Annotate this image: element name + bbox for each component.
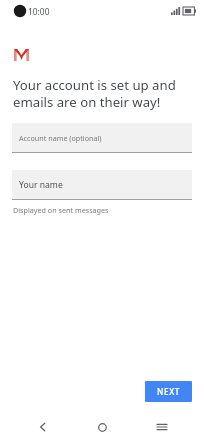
staticText: Your account is set up and emails are on… <box>13 76 176 111</box>
staticText: Account name (optional) <box>19 133 102 143</box>
button[interactable]: Back <box>26 412 60 442</box>
button[interactable]: Home <box>85 412 119 442</box>
button[interactable]: Account name (optional) <box>12 123 192 153</box>
button[interactable]: Recent apps <box>145 412 179 442</box>
button[interactable]: NEXT <box>145 381 192 402</box>
staticText: Displayed on sent messages <box>13 205 109 215</box>
button[interactable]: Your name <box>12 170 192 200</box>
staticText: Your name <box>19 179 63 191</box>
staticText: NEXT <box>157 386 180 397</box>
staticText: 10:00 <box>28 6 50 17</box>
